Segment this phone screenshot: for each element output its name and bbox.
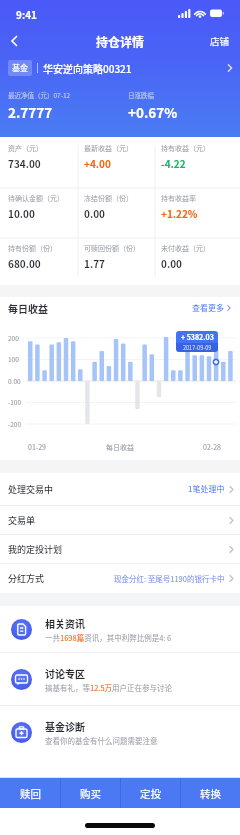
staticText: +1.22% bbox=[161, 206, 198, 220]
staticText: 赎回 bbox=[20, 786, 41, 801]
staticText: 冻结份额（份） bbox=[84, 193, 133, 203]
staticText: 我的定投计划 bbox=[8, 543, 63, 556]
button[interactable]: 购买 bbox=[61, 778, 120, 808]
staticText: 0.00 bbox=[8, 376, 21, 385]
button[interactable]: 赎回 bbox=[0, 778, 60, 808]
button[interactable]: 处理交易中 bbox=[0, 473, 240, 505]
button[interactable]: 查看更多 bbox=[192, 302, 232, 314]
button[interactable]: 定投 bbox=[121, 778, 180, 808]
staticText: 搞基有礼，等12.5万用户正在参与讨论 bbox=[45, 682, 173, 693]
staticText: 购买 bbox=[80, 786, 101, 801]
staticText: 每日收益 bbox=[8, 301, 48, 315]
staticText: 查看更多 bbox=[192, 302, 224, 314]
staticText: 9:41 bbox=[16, 7, 37, 21]
staticText: 持有份额（份） bbox=[8, 243, 57, 253]
staticText: 680.00 bbox=[8, 256, 41, 270]
button[interactable]: 相关资讯 bbox=[0, 606, 240, 652]
staticText: 可赎回份额（份） bbox=[84, 243, 140, 253]
button[interactable]: 店铺 bbox=[210, 34, 240, 48]
staticText: 100 bbox=[8, 354, 19, 363]
button[interactable]: 基金 bbox=[8, 59, 234, 76]
staticText: 最新收益（元） bbox=[84, 143, 133, 153]
staticText: +4.00 bbox=[84, 156, 111, 170]
staticText: -100 bbox=[8, 397, 22, 406]
staticText: 华安逆向策略00321 bbox=[43, 61, 132, 75]
button[interactable]: 交易单 bbox=[0, 506, 240, 534]
staticText: 一共1698篇资讯，其中利弊比例是4: 6 bbox=[45, 632, 172, 643]
staticText: 定投 bbox=[140, 786, 161, 801]
button[interactable] bbox=[0, 36, 20, 46]
staticText: 持有收益率 bbox=[161, 193, 196, 203]
staticText: 10.00 bbox=[8, 206, 35, 220]
staticText: 持仓详情 bbox=[96, 33, 145, 50]
staticText: 资产（元） bbox=[8, 143, 43, 153]
staticText: 0.00 bbox=[161, 256, 182, 270]
button[interactable]: 转换 bbox=[181, 778, 240, 808]
staticText: -200 bbox=[8, 419, 22, 428]
staticText: 转换 bbox=[200, 786, 221, 801]
button[interactable]: 分红方式 bbox=[0, 564, 240, 593]
staticText: 相关资讯 bbox=[45, 616, 85, 630]
staticText: 持有收益（元） bbox=[161, 143, 210, 153]
staticText: 待确认金额（元） bbox=[8, 193, 64, 203]
staticText: 1笔处理中 bbox=[188, 483, 225, 495]
staticText: 2.7777 bbox=[8, 102, 53, 122]
staticText: 200 bbox=[8, 333, 19, 342]
staticText: 分红方式 bbox=[8, 572, 45, 585]
button[interactable]: 我的定投计划 bbox=[0, 535, 240, 563]
staticText: 基金 bbox=[12, 62, 28, 74]
staticText: 查看你的基金有什么问题需要注意 bbox=[45, 735, 158, 746]
staticText: +0.67% bbox=[128, 102, 178, 122]
staticText: 店铺 bbox=[210, 34, 230, 48]
button[interactable]: 讨论专区 bbox=[0, 653, 240, 705]
staticText: 基金诊断 bbox=[45, 719, 85, 733]
staticText: 02-28 bbox=[203, 442, 221, 452]
staticText: 处理交易中 bbox=[8, 483, 54, 496]
staticText: 01-29 bbox=[28, 442, 46, 452]
staticText: 现金分红: 至尾号1190的银行卡中 bbox=[114, 573, 225, 584]
staticText: 未付收益（元） bbox=[161, 243, 210, 253]
staticText: 0.00 bbox=[84, 206, 105, 220]
staticText: -4.22 bbox=[161, 156, 186, 170]
button[interactable]: 基金诊断 bbox=[0, 706, 240, 759]
staticText: 交易单 bbox=[8, 514, 36, 527]
staticText: 1.77 bbox=[84, 256, 105, 270]
staticText: 讨论专区 bbox=[45, 666, 85, 680]
staticText: 最近净值（元）07-12 bbox=[8, 90, 71, 99]
staticText: 734.00 bbox=[8, 156, 41, 170]
staticText: + 5382.03 bbox=[181, 332, 214, 342]
staticText: 日涨跌幅 bbox=[128, 90, 154, 99]
staticText: 每日收益 bbox=[106, 442, 134, 452]
staticText: 2017-09-09 bbox=[183, 344, 212, 352]
